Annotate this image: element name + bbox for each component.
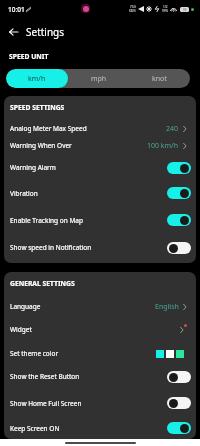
staticText: SPEED SETTINGS — [10, 103, 65, 112]
staticText: Keep Screen ON — [10, 424, 60, 433]
staticText: Show the Reset Button — [10, 372, 80, 381]
button[interactable]: Set theme color — [4, 343, 196, 364]
staticText: 73.6 — [130, 5, 136, 9]
staticText: knot — [152, 74, 167, 84]
staticText: English — [155, 302, 179, 312]
staticText: Settings — [26, 25, 65, 39]
staticText: SPEED UNIT — [9, 52, 49, 61]
button[interactable]: Warning Alarm — [4, 155, 196, 180]
staticText: 1/2 — [163, 5, 168, 9]
staticText: GENERAL SETTINGS — [10, 279, 75, 288]
staticText: Enable Tracking on Map — [10, 216, 83, 225]
button[interactable]: Show Home Full Screen — [4, 389, 196, 417]
button[interactable]: Enable Tracking on Map — [4, 206, 196, 234]
button[interactable]: Show the Reset Button — [4, 364, 196, 389]
staticText: 99 — [183, 8, 187, 12]
staticText: KB/S — [129, 9, 136, 13]
staticText: Widget — [10, 325, 32, 334]
button[interactable]: km/h — [6, 69, 68, 88]
staticText: 240 — [166, 124, 179, 134]
button[interactable]: Switch on — [167, 422, 191, 434]
button[interactable]: mph — [68, 69, 129, 88]
button[interactable]: Switch on — [167, 162, 191, 174]
button[interactable]: Back — [0, 19, 26, 45]
button[interactable]: Warning When Over — [4, 139, 196, 152]
staticText: Analog Meter Max Speed — [10, 124, 87, 133]
button[interactable]: Keep Screen ON — [4, 417, 196, 439]
staticText: Show speed in Notification — [10, 243, 92, 252]
button[interactable]: Switch on — [167, 187, 191, 199]
staticText: mph — [91, 74, 107, 84]
button[interactable]: Switch off — [167, 242, 191, 254]
button[interactable]: Vibration — [4, 180, 196, 206]
button[interactable]: Switch off — [167, 397, 191, 409]
button[interactable]: Language — [4, 297, 196, 316]
staticText: Show Home Full Screen — [10, 399, 82, 408]
button[interactable]: knot — [129, 69, 190, 88]
button[interactable]: Analog Meter Max Speed — [4, 122, 196, 135]
staticText: 99% — [162, 9, 168, 13]
button[interactable]: Show speed in Notification — [4, 234, 196, 261]
button[interactable]: Widget — [4, 316, 196, 343]
staticText: Vibration — [10, 189, 38, 198]
staticText: Language — [10, 302, 41, 311]
staticText: 10:01 — [8, 5, 25, 14]
staticText: Warning When Over — [10, 141, 72, 150]
staticText: Set theme color — [10, 349, 59, 358]
button[interactable]: Switch off — [167, 371, 191, 383]
button[interactable]: Switch on — [167, 214, 191, 226]
staticText: Warning Alarm — [10, 163, 56, 172]
staticText: km/h — [28, 74, 46, 84]
staticText: 100 km/h — [147, 141, 179, 151]
